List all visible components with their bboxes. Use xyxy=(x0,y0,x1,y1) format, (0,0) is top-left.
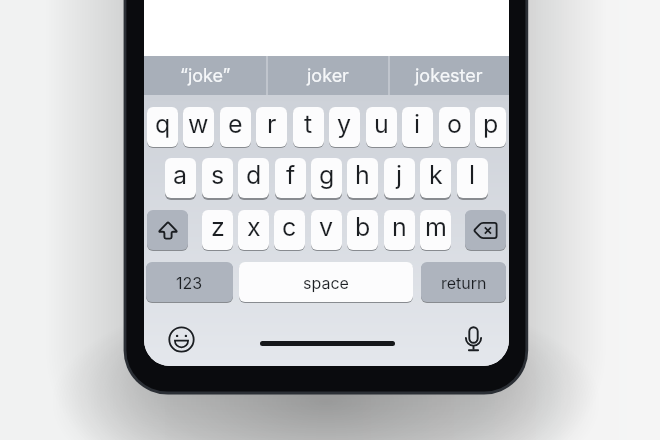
button[interactable]: joker xyxy=(266,56,389,95)
staticText: y xyxy=(337,109,352,139)
button[interactable]: u xyxy=(366,107,397,147)
button[interactable]: q xyxy=(147,107,178,147)
button[interactable]: l xyxy=(457,158,488,198)
staticText: s xyxy=(211,160,225,190)
button[interactable]: d xyxy=(238,158,269,198)
button[interactable]: jokester xyxy=(389,56,509,95)
button[interactable]: r xyxy=(256,107,287,147)
staticText: jokester xyxy=(415,65,483,87)
staticText: z xyxy=(211,212,225,242)
staticText: i xyxy=(414,109,421,139)
staticText: t xyxy=(304,109,313,139)
button[interactable]: m xyxy=(420,210,451,250)
staticText: g xyxy=(319,160,335,190)
button[interactable] xyxy=(458,324,489,355)
button[interactable]: z xyxy=(202,210,233,250)
button[interactable]: o xyxy=(439,107,470,147)
button[interactable]: n xyxy=(384,210,415,250)
button[interactable]: c xyxy=(274,210,305,250)
staticText: c xyxy=(282,212,297,242)
button[interactable]: 123 xyxy=(146,262,233,302)
staticText: a xyxy=(173,160,188,190)
staticText: w xyxy=(188,109,209,139)
button[interactable]: a xyxy=(165,158,196,198)
button[interactable]: h xyxy=(347,158,378,198)
staticText: p xyxy=(483,109,499,139)
staticText: h xyxy=(355,160,370,190)
button[interactable]: j xyxy=(384,158,415,198)
staticText: space xyxy=(303,273,349,292)
staticText: d xyxy=(246,160,262,190)
button[interactable] xyxy=(166,324,197,355)
button[interactable]: g xyxy=(311,158,342,198)
button[interactable]: “joke” xyxy=(144,56,266,95)
button[interactable]: e xyxy=(220,107,251,147)
staticText: e xyxy=(228,109,243,139)
staticText: v xyxy=(319,212,334,242)
staticText: r xyxy=(267,109,277,139)
staticText: m xyxy=(425,212,447,242)
button[interactable]: w xyxy=(183,107,214,147)
staticText: o xyxy=(447,109,462,139)
button[interactable]: x xyxy=(238,210,269,250)
button[interactable]: return xyxy=(421,262,506,302)
staticText: b xyxy=(355,212,371,242)
staticText: x xyxy=(247,212,261,242)
button[interactable]: space xyxy=(239,262,413,302)
staticText: n xyxy=(392,212,407,242)
staticText: u xyxy=(374,109,389,139)
staticText: l xyxy=(469,160,476,190)
staticText: “joke” xyxy=(180,65,231,87)
button[interactable]: v xyxy=(311,210,342,250)
button[interactable]: t xyxy=(293,107,324,147)
button[interactable] xyxy=(147,210,188,250)
button[interactable]: y xyxy=(329,107,360,147)
staticText: 123 xyxy=(176,273,203,292)
staticText: k xyxy=(429,160,443,190)
staticText: joker xyxy=(307,65,349,87)
button[interactable]: s xyxy=(202,158,233,198)
staticText: j xyxy=(396,160,403,190)
button[interactable]: p xyxy=(475,107,506,147)
button[interactable]: k xyxy=(420,158,451,198)
button[interactable]: f xyxy=(275,158,306,198)
button[interactable]: i xyxy=(402,107,433,147)
staticText: f xyxy=(286,160,296,190)
button[interactable]: b xyxy=(347,210,378,250)
staticText: q xyxy=(155,109,171,139)
button[interactable] xyxy=(465,210,506,250)
staticText: return xyxy=(441,273,487,292)
